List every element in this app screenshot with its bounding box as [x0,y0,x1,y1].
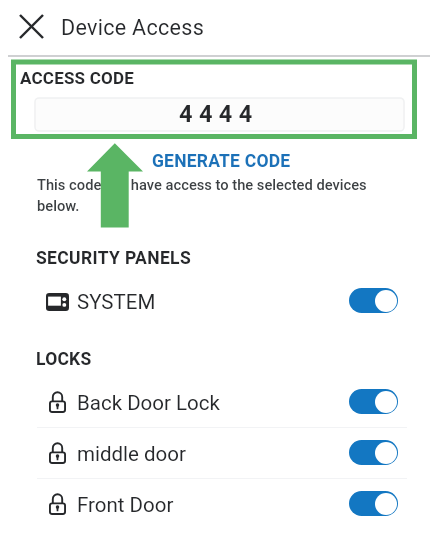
button[interactable]: Toggle access for SYSTEM, on [349,288,398,313]
staticText: Device Access [61,15,205,40]
staticText: GENERATE CODE [152,151,291,172]
staticText: This code will have access to the select… [37,176,387,214]
button[interactable]: Back Door Lock [0,377,439,427]
staticText: SECURITY PANELS [36,248,192,269]
staticText: 4 4 4 4 [179,100,253,128]
button[interactable]: Toggle access for middle door, on [349,440,398,465]
staticText: SYSTEM [77,290,156,314]
button[interactable]: Close [13,8,49,44]
staticText: LOCKS [36,349,92,370]
button[interactable]: SYSTEM [0,276,439,326]
button[interactable]: 4 4 4 4 [35,98,404,131]
button[interactable]: GENERATE CODE [152,151,291,172]
button[interactable]: middle door [0,428,439,478]
staticText: Front Door [77,493,174,517]
staticText: Back Door Lock [77,391,220,415]
button[interactable]: Toggle access for Back Door Lock, on [349,389,398,414]
button[interactable]: Toggle access for Front Door, on [349,491,398,516]
staticText: middle door [77,442,186,466]
staticText: ACCESS CODE [20,68,134,88]
button[interactable]: Front Door [0,479,439,529]
